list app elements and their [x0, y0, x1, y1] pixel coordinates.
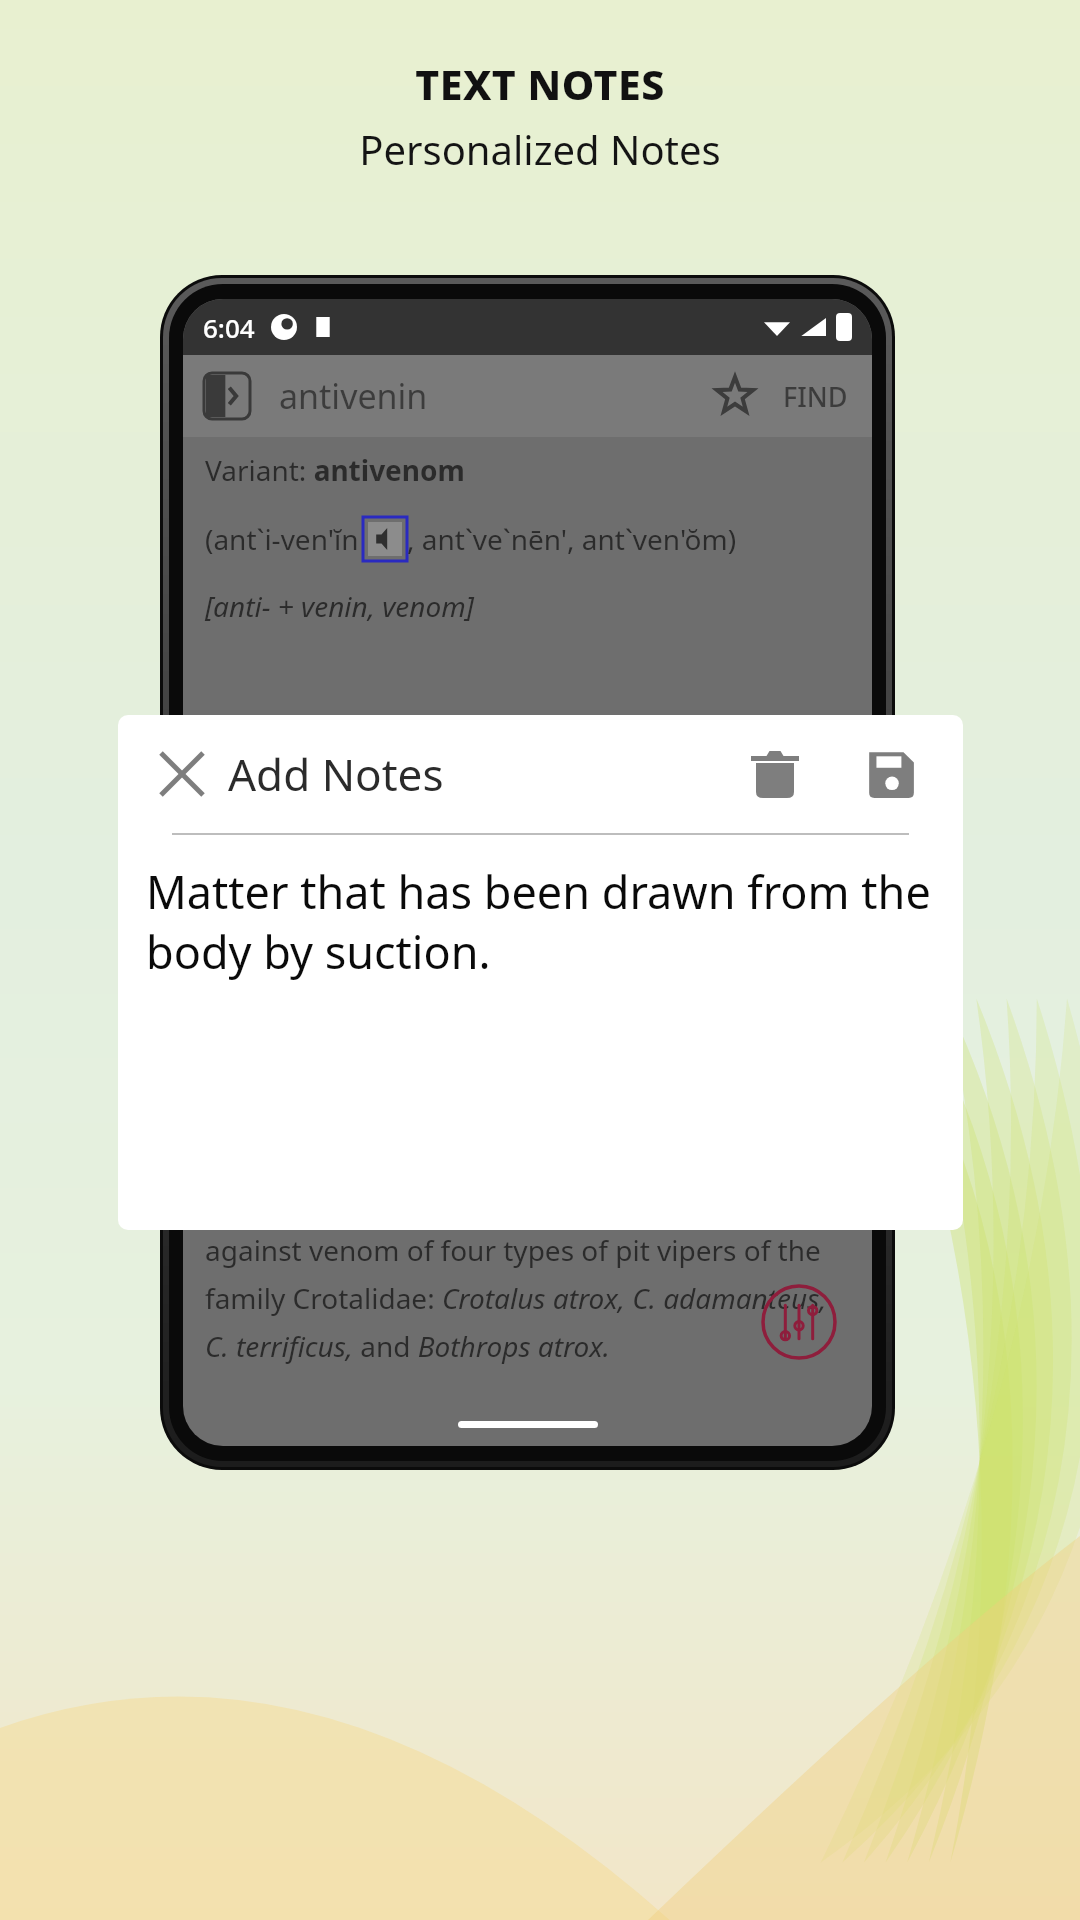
staticText: 6:04: [203, 310, 255, 345]
button[interactable]: Save: [855, 738, 927, 810]
staticText: , ant`ve`nēn', ant`ven'ŏm): [407, 520, 737, 558]
staticText: Variant: antivenom: [205, 451, 465, 489]
staticText: Add Notes: [228, 744, 444, 804]
staticText: antivenin: [279, 373, 428, 419]
button[interactable]: Play pronunciation: [363, 517, 407, 561]
button[interactable]: Menu: [201, 370, 253, 422]
button[interactable]: Favorite: [707, 368, 763, 424]
staticText: FIND: [783, 378, 848, 415]
staticText: Personalized Notes: [359, 122, 721, 176]
staticText: from horses immunized against the venom …: [205, 955, 806, 993]
button[interactable]: Delete: [739, 738, 811, 810]
button[interactable]: FIND: [777, 372, 854, 421]
staticText: TEXT NOTES: [415, 56, 665, 112]
staticText: (Crotalidae) polyvalent a.Anti-snakebite…: [205, 1135, 850, 1365]
button[interactable]: Close: [154, 746, 210, 802]
staticText: Matter that has been drawn from the body…: [146, 861, 935, 982]
staticText: (ant`i-ven'ĭn: [205, 520, 359, 558]
button[interactable]: Settings: [761, 1284, 837, 1360]
staticText: [anti- + venin, venom]: [205, 587, 474, 625]
